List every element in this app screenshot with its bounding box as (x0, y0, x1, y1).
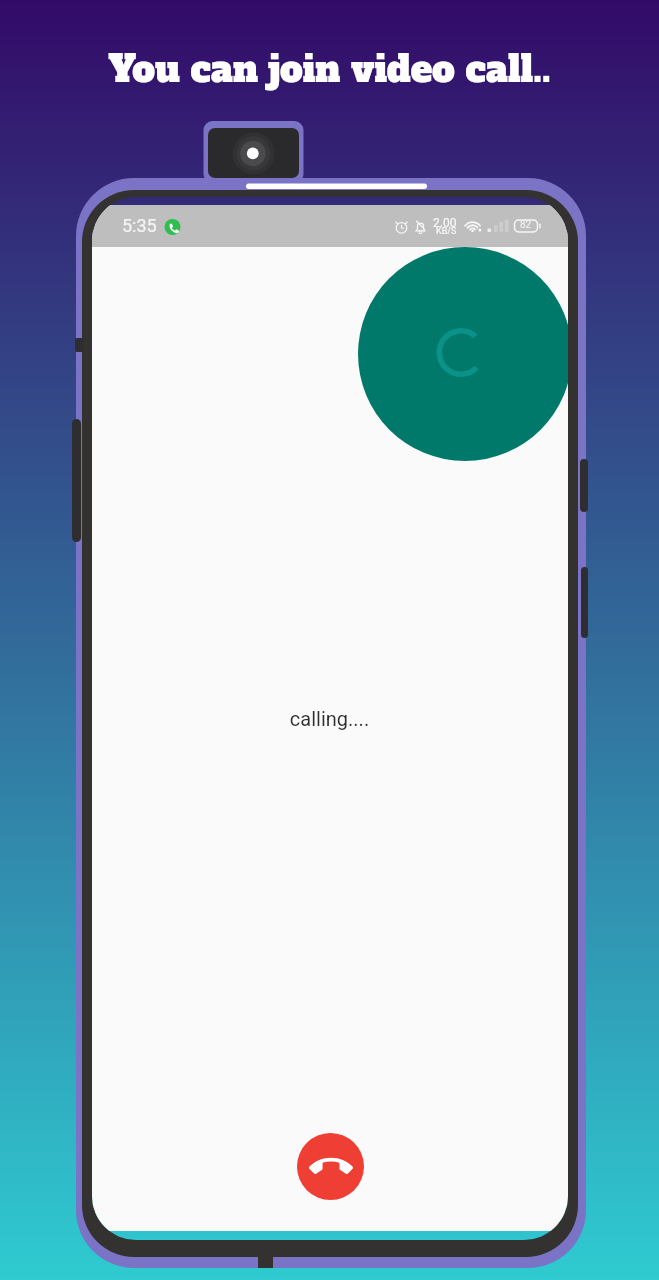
staticText: calling.... (0, 707, 659, 1280)
staticText: KB/S (436, 226, 457, 237)
button[interactable]: End call (297, 1133, 364, 1200)
staticText: 5:35 (122, 215, 157, 236)
staticText: You can join video call.. (0, 45, 659, 1280)
staticText: 2.00 (433, 216, 457, 230)
staticText: 82 (520, 219, 532, 231)
